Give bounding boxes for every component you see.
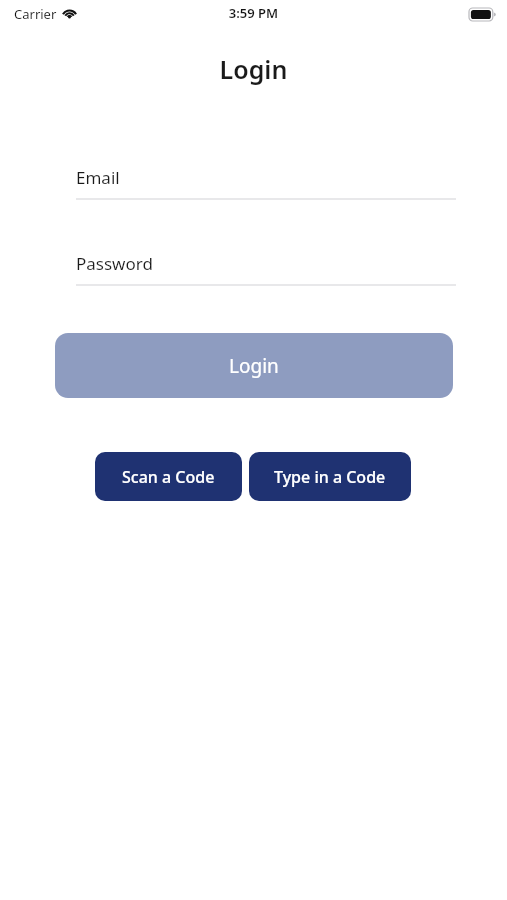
staticText: 3:59 PM — [0, 4, 507, 22]
button[interactable]: Scan a Code — [95, 452, 242, 501]
staticText: Password — [76, 252, 153, 275]
other: Battery full — [469, 8, 496, 21]
button[interactable]: Email — [76, 162, 456, 192]
staticText: Scan a Code — [122, 466, 215, 488]
staticText: Login — [229, 353, 279, 379]
staticText: Type in a Code — [274, 466, 386, 488]
button[interactable]: Password — [76, 248, 456, 278]
button[interactable]: Login — [55, 333, 453, 398]
staticText: Email — [76, 166, 120, 189]
button[interactable]: Type in a Code — [249, 452, 411, 501]
staticText: Carrier — [14, 5, 57, 23]
staticText: Login — [0, 52, 507, 86]
other: Wi-Fi — [62, 7, 77, 19]
